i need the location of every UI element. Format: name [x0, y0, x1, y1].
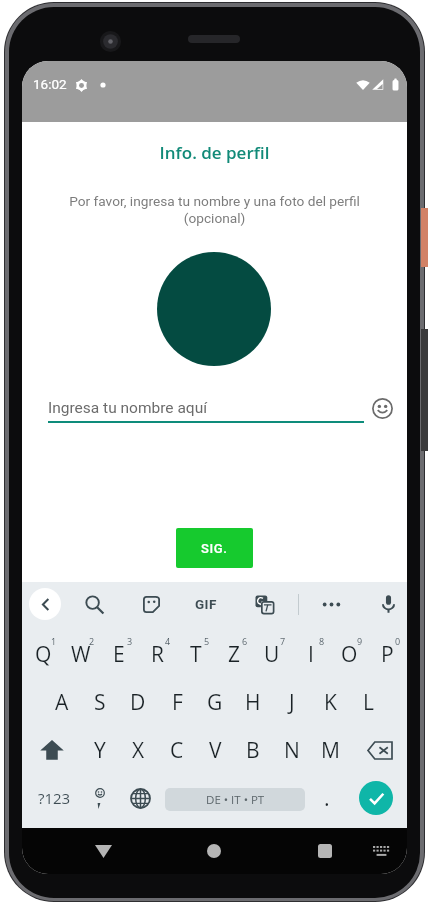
button[interactable]: Cambiar teclado: [365, 835, 397, 867]
button[interactable]: Cambiar idioma: [119, 774, 161, 822]
staticText: L: [363, 688, 374, 717]
button[interactable]: Inicio: [194, 831, 234, 871]
staticText: A: [55, 688, 69, 717]
staticText: DE • IT • PT: [206, 792, 265, 808]
button[interactable]: E: [100, 630, 138, 678]
staticText: 9: [357, 635, 363, 647]
staticText: T: [190, 640, 202, 669]
button[interactable]: H: [234, 678, 272, 726]
button[interactable]: U: [253, 630, 291, 678]
button[interactable]: G: [196, 678, 234, 726]
staticText: P: [381, 640, 394, 669]
staticText: Info. de perfil: [22, 141, 407, 164]
staticText: K: [324, 688, 337, 717]
staticText: N: [284, 736, 300, 765]
button[interactable]: Buscar: [78, 588, 110, 620]
staticText: 5: [204, 635, 210, 647]
staticText: E: [113, 640, 125, 669]
staticText: ?123: [38, 788, 71, 808]
staticText: 7: [280, 635, 286, 647]
staticText: U: [264, 640, 280, 669]
staticText: .: [324, 784, 330, 813]
button[interactable]: Cerrar teclado: [29, 588, 61, 620]
staticText: GIF: [195, 596, 217, 612]
button[interactable]: M: [311, 726, 349, 774]
button[interactable]: S: [81, 678, 119, 726]
staticText: G: [207, 688, 223, 717]
button[interactable]: I: [292, 630, 330, 678]
button[interactable]: L: [349, 678, 387, 726]
button[interactable]: SIG.: [176, 528, 253, 568]
button[interactable]: T: [177, 630, 215, 678]
button[interactable]: F: [158, 678, 196, 726]
staticText: O: [341, 640, 358, 669]
button[interactable]: Más opciones: [315, 588, 347, 620]
button[interactable]: W: [62, 630, 100, 678]
staticText: F: [172, 688, 183, 717]
button[interactable]: Aceptar: [359, 781, 393, 815]
staticText: H: [245, 688, 261, 717]
staticText: W: [71, 640, 91, 669]
staticText: C: [170, 736, 184, 765]
button[interactable]: O: [330, 630, 368, 678]
staticText: B: [246, 736, 260, 765]
button[interactable]: GIF: [183, 588, 229, 620]
button[interactable]: N: [273, 726, 311, 774]
staticText: Q: [35, 640, 52, 669]
button[interactable]: Y: [81, 726, 119, 774]
button[interactable]: ?123: [26, 774, 82, 822]
staticText: S: [94, 688, 106, 717]
button[interactable]: D: [119, 678, 157, 726]
staticText: R: [151, 640, 164, 669]
button[interactable]: J: [273, 678, 311, 726]
staticText: 2: [89, 635, 95, 647]
button[interactable]: Emoji: [80, 774, 121, 822]
button[interactable]: P: [368, 630, 406, 678]
button[interactable]: DE • IT • PT: [165, 788, 305, 811]
staticText: 4: [165, 635, 171, 647]
staticText: 0: [395, 635, 401, 647]
button[interactable]: Stickers: [135, 588, 167, 620]
button[interactable]: Insertar emoji: [365, 391, 400, 426]
button[interactable]: Traducir: [248, 588, 280, 620]
staticText: M: [321, 736, 340, 765]
staticText: D: [130, 688, 146, 717]
staticText: Y: [94, 736, 106, 765]
button[interactable]: Borrar: [352, 726, 407, 774]
staticText: Z: [228, 640, 240, 669]
button[interactable]: Aplicaciones recientes: [305, 831, 345, 871]
button[interactable]: Q: [24, 630, 62, 678]
button[interactable]: Mayúsculas: [24, 726, 79, 774]
button[interactable]: Z: [215, 630, 253, 678]
button[interactable]: K: [311, 678, 349, 726]
button[interactable]: A: [43, 678, 81, 726]
staticText: 6: [242, 635, 248, 647]
button[interactable]: Agregar foto de perfil: [157, 252, 271, 366]
button[interactable]: Dictado por voz: [372, 588, 404, 620]
staticText: V: [209, 736, 222, 765]
button[interactable]: V: [196, 726, 234, 774]
button[interactable]: B: [234, 726, 272, 774]
button[interactable]: Atrás: [83, 831, 123, 871]
button[interactable]: C: [158, 726, 196, 774]
staticText: J: [289, 688, 295, 717]
staticText: I: [308, 640, 314, 669]
button[interactable]: X: [119, 726, 157, 774]
staticText: X: [132, 736, 145, 765]
staticText: Ingresa tu nombre aquí: [48, 399, 208, 417]
staticText: SIG.: [201, 541, 228, 556]
staticText: 1: [51, 635, 57, 647]
staticText: 8: [319, 635, 325, 647]
button[interactable]: R: [138, 630, 176, 678]
staticText: Por favor, ingresa tu nombre y una foto …: [22, 193, 407, 227]
staticText: 16:02: [33, 76, 67, 92]
staticText: 3: [127, 635, 133, 647]
button[interactable]: .: [310, 774, 343, 822]
